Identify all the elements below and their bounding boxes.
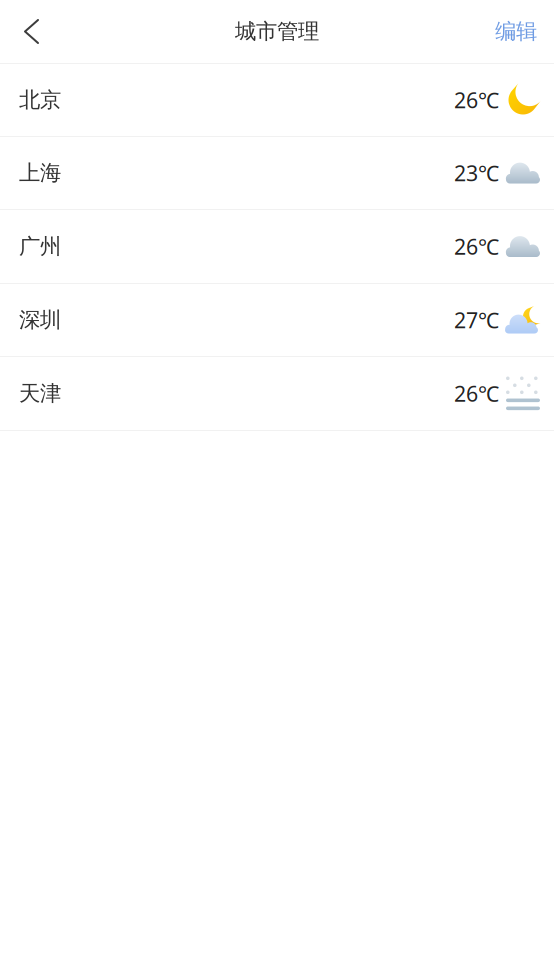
staticText: 上海 [19, 160, 61, 186]
staticText: 26℃ [454, 379, 499, 408]
staticText: 深圳 [19, 307, 61, 333]
staticText: 26℃ [454, 232, 499, 261]
staticText: 编辑 [495, 18, 537, 45]
staticText: 北京 [19, 87, 61, 113]
staticText: 天津 [19, 380, 61, 407]
button[interactable]: 深圳 [0, 284, 554, 356]
button[interactable]: 上海 [0, 137, 554, 209]
button[interactable]: 天津 [0, 357, 554, 430]
button[interactable]: 广州 [0, 210, 554, 283]
button[interactable]: 编辑 [481, 8, 552, 55]
staticText: 城市管理 [235, 18, 319, 45]
staticText: 23℃ [454, 159, 499, 187]
staticText: 26℃ [454, 86, 499, 114]
button[interactable]: Back [2, 6, 55, 57]
staticText: 27℃ [454, 306, 499, 334]
staticText: 广州 [19, 233, 61, 260]
button[interactable]: 北京 [0, 64, 554, 136]
